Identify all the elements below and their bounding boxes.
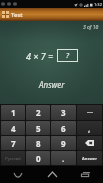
staticText: Test bbox=[11, 11, 23, 19]
button[interactable]: 9 bbox=[51, 136, 76, 150]
button[interactable]: 4 bbox=[1, 121, 25, 135]
staticText: 7 bbox=[11, 138, 16, 149]
staticText: 3 bbox=[61, 107, 66, 118]
button[interactable]: Comma bbox=[77, 121, 102, 135]
staticText: , bbox=[88, 123, 91, 134]
button[interactable]: Back bbox=[3, 166, 33, 183]
button[interactable]: Recents bbox=[70, 166, 100, 183]
button[interactable]: 3 bbox=[51, 105, 76, 120]
staticText: 4 bbox=[11, 123, 16, 134]
staticText: 4 × 7 = bbox=[26, 50, 54, 62]
button[interactable]: Minus bbox=[77, 105, 102, 120]
button[interactable]: 2 bbox=[26, 105, 50, 120]
button[interactable]: Русский bbox=[1, 151, 25, 165]
button[interactable]: 8 bbox=[26, 136, 50, 150]
staticText: Answer bbox=[39, 79, 65, 90]
button[interactable]: 0 bbox=[26, 151, 50, 165]
staticText: ? bbox=[66, 51, 70, 61]
button[interactable]: Backspace bbox=[77, 136, 102, 150]
button[interactable]: ? bbox=[57, 49, 78, 62]
button[interactable]: Test bbox=[0, 8, 103, 21]
button[interactable]: 7 bbox=[1, 136, 25, 150]
button[interactable]: 6 bbox=[51, 121, 76, 135]
staticText: . bbox=[62, 153, 65, 164]
staticText: 2 bbox=[36, 107, 41, 118]
staticText: 5 bbox=[36, 123, 41, 134]
button[interactable]: 1 bbox=[1, 105, 25, 120]
button[interactable]: . bbox=[51, 151, 76, 165]
staticText: 1:32 bbox=[94, 2, 102, 7]
button[interactable]: 5 bbox=[26, 121, 50, 135]
staticText: 9 bbox=[61, 138, 66, 149]
staticText: 3 of 10 bbox=[83, 24, 99, 31]
button[interactable]: Answer bbox=[77, 151, 102, 165]
staticText: 6 bbox=[61, 123, 66, 134]
staticText: 1 bbox=[11, 107, 16, 118]
staticText: 0 bbox=[36, 153, 41, 164]
staticText: 8 bbox=[36, 138, 41, 149]
staticText: Русский bbox=[5, 156, 21, 161]
button[interactable]: Home bbox=[37, 166, 67, 183]
staticText: Answer bbox=[82, 156, 97, 161]
